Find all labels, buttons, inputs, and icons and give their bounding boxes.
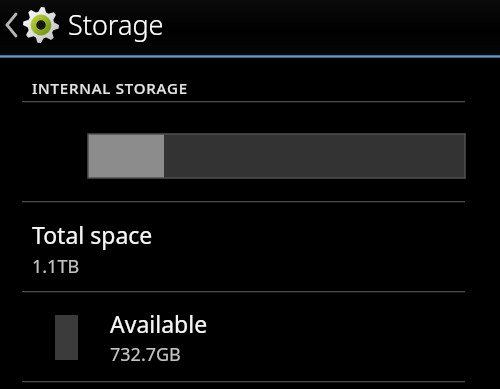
button[interactable]: Available <box>0 293 500 381</box>
staticText: 1.1TB <box>32 254 80 279</box>
staticText: INTERNAL STORAGE <box>32 78 188 98</box>
staticText: Storage <box>68 6 164 43</box>
button[interactable] <box>88 134 465 178</box>
staticText: Total space <box>32 219 153 250</box>
button[interactable]: Total space <box>0 203 500 291</box>
staticText: Available <box>110 308 208 339</box>
button[interactable]: Navigate up, Settings <box>0 0 500 55</box>
other: Navigate up, Settings <box>0 0 62 55</box>
staticText: 732.7GB <box>110 342 181 367</box>
